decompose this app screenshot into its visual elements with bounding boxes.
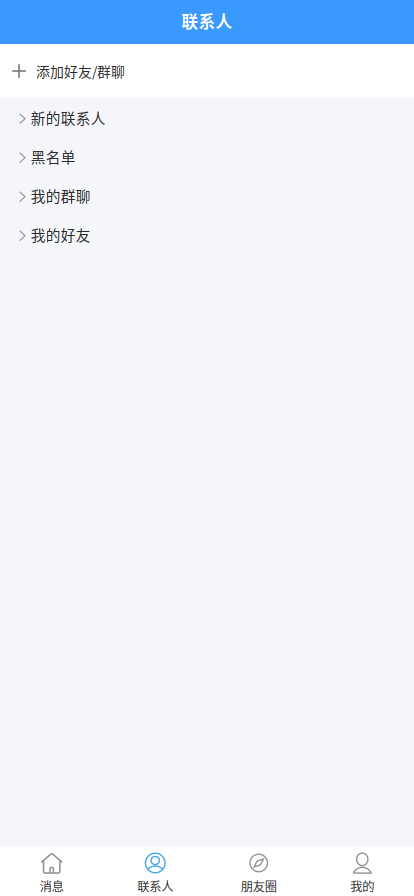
button[interactable]: 新的联系人 — [0, 98, 414, 137]
button[interactable]: 我的好友 — [0, 215, 414, 254]
staticText: 朋友圈 — [241, 877, 277, 895]
staticText: 我的 — [350, 877, 374, 895]
button[interactable]: 我的 — [310, 846, 414, 896]
staticText: 我的群聊 — [31, 185, 91, 206]
staticText: 我的好友 — [31, 224, 91, 245]
button[interactable]: 消息 — [0, 846, 103, 896]
button[interactable]: 添加好友/群聊 — [0, 44, 414, 98]
button[interactable]: 我的群聊 — [0, 176, 414, 215]
staticText: 联系人 — [137, 877, 173, 895]
staticText: 消息 — [40, 877, 64, 895]
staticText: 黑名单 — [31, 146, 76, 167]
button[interactable]: 朋友圈 — [207, 846, 310, 896]
staticText: 添加好友/群聊 — [36, 61, 125, 81]
button[interactable]: 黑名单 — [0, 137, 414, 176]
staticText: 联系人 — [181, 9, 232, 33]
button[interactable]: 联系人 — [103, 846, 207, 896]
staticText: 新的联系人 — [31, 107, 106, 128]
